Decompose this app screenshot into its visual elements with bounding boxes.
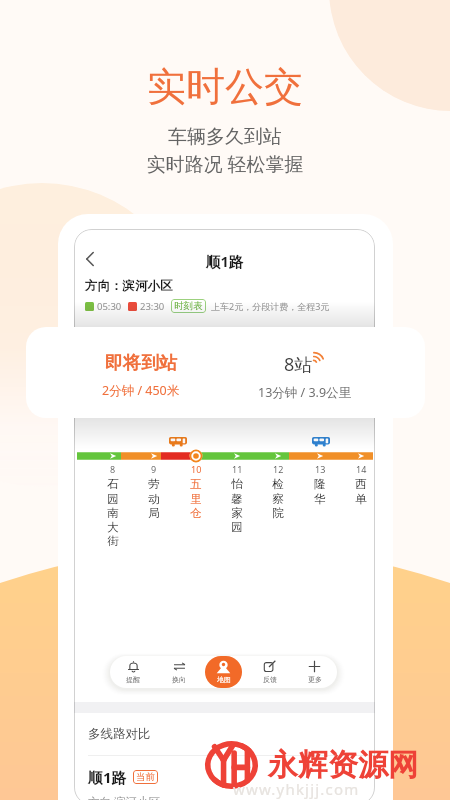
staticText: 多线路对比 [88,726,151,742]
staticText: 顺1路 [206,251,244,271]
staticText: 怡馨家园 [231,477,243,534]
staticText: 12 [273,463,284,475]
staticText: 方向 滨河小区 [88,794,160,800]
staticText: 当前 [136,771,155,783]
button[interactable]: 提醒 [110,656,156,688]
button[interactable]: 地图 [205,656,242,688]
staticText: 西单 [355,477,367,506]
staticText: 隆华 [314,477,326,506]
staticText: 8站 [284,352,313,377]
staticText: 11 [232,463,243,475]
button[interactable]: 换向 [156,656,202,688]
staticText: 方向：滨河小区 [85,278,173,294]
button[interactable]: Back [77,246,103,272]
staticText: 反馈 [263,675,277,684]
staticText: 14 [356,463,367,475]
staticText: 10 [191,463,202,475]
staticText: 时刻表 [174,300,203,312]
staticText: 换向 [172,675,186,684]
staticText: 实时公交 [0,62,450,111]
staticText: 石园南大街 [107,477,119,548]
button[interactable]: 反馈 [247,656,292,688]
staticText: 永辉资源网 [268,746,418,784]
staticText: 地图 [217,675,231,684]
button[interactable]: 时刻表 [171,299,206,313]
staticText: 9 [151,463,157,475]
staticText: 提醒 [126,675,140,684]
staticText: 车辆多久到站 实时路况 轻松掌握 [0,125,450,176]
staticText: 上车2元，分段计费，全程3元 [211,300,330,312]
staticText: 13 [315,463,326,475]
staticText: 更多 [308,675,322,684]
staticText: 13分钟 / 3.9公里 [258,384,352,401]
staticText: 五里仓 [190,477,202,520]
staticText: 2分钟 / 450米 [102,382,180,399]
button[interactable]: 更多 [292,656,337,688]
staticText: 8 [110,463,116,475]
staticText: 检察院 [272,477,284,520]
staticText: 即将到站 [105,352,177,375]
staticText: 顺1路 [88,767,127,787]
staticText: 23:30 [140,300,165,313]
staticText: www.yhkjjj.com [233,779,360,799]
staticText: 劳动局 [148,477,160,520]
staticText: 05:30 [97,300,122,313]
